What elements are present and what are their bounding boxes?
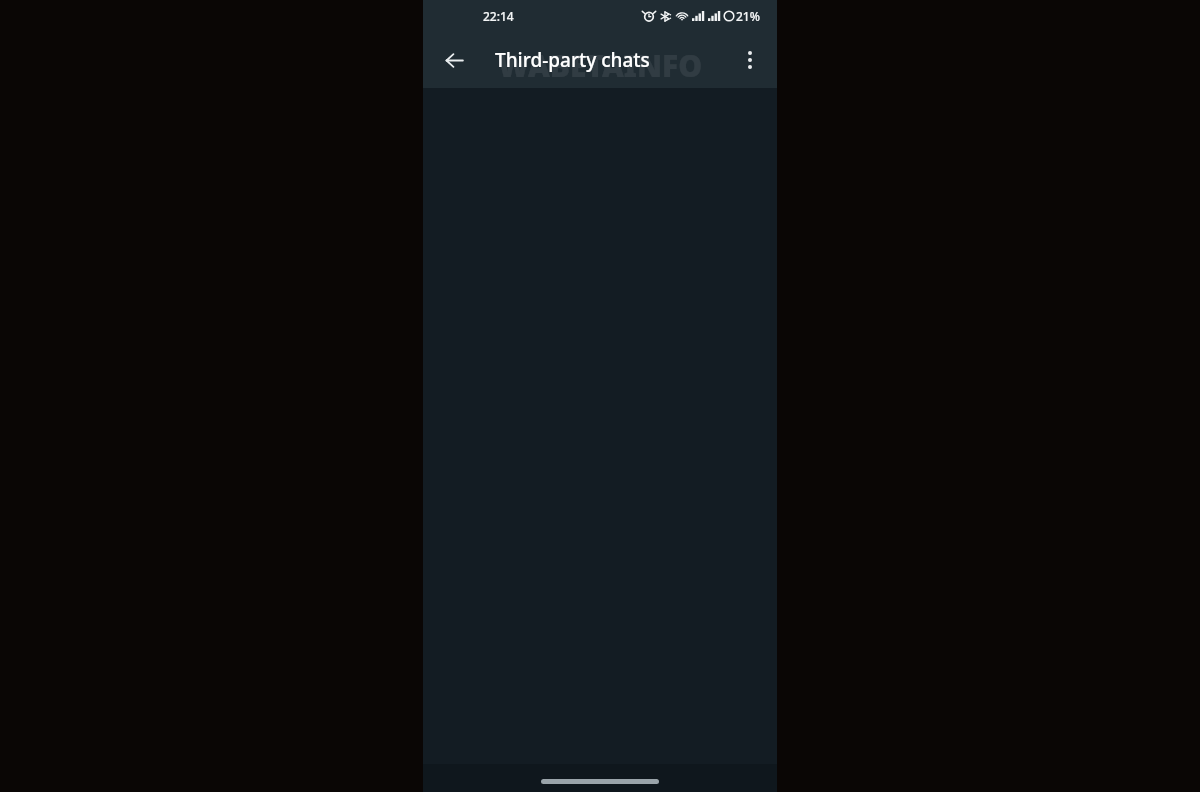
staticText: Third-party chats	[495, 47, 650, 73]
button[interactable]: Back	[432, 38, 476, 82]
staticText: 22:14	[483, 8, 514, 24]
button[interactable]: More options	[728, 38, 772, 82]
staticText: WABETAINFO	[423, 45, 777, 86]
staticText: 21%	[736, 8, 760, 24]
